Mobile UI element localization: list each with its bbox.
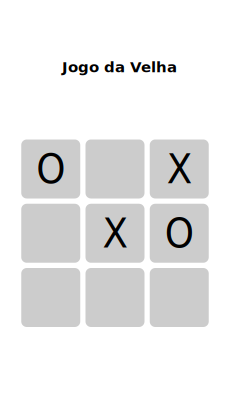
button[interactable]: X, row 1, column 3 [150, 139, 209, 198]
staticText: X [102, 209, 127, 257]
button[interactable]: X, row 2, column 2 [85, 204, 144, 263]
button[interactable]: Empty square, row 2, column 1 [21, 204, 80, 263]
button[interactable]: Empty square, row 3, column 3 [150, 268, 209, 327]
staticText: O [36, 145, 65, 193]
staticText: Jogo da Velha [62, 58, 177, 76]
button[interactable]: Empty square, row 3, column 2 [85, 268, 144, 327]
staticText: O [165, 209, 194, 257]
button[interactable]: O, row 1, column 1 [21, 139, 80, 198]
button[interactable]: Empty square, row 3, column 1 [21, 268, 80, 327]
staticText: X [167, 145, 192, 193]
button[interactable]: O, row 2, column 3 [150, 204, 209, 263]
